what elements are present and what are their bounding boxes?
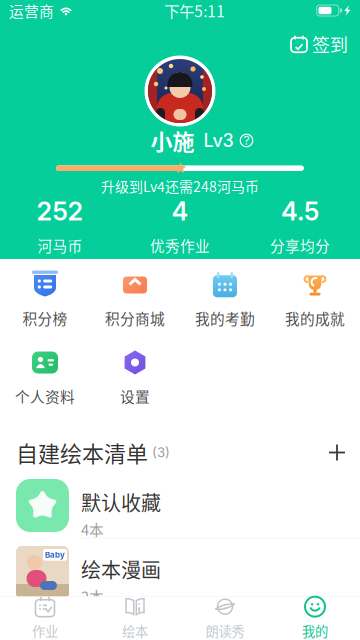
button[interactable]: 我的 bbox=[270, 597, 360, 640]
staticText: Baby bbox=[45, 550, 65, 560]
staticText: 运营商 bbox=[9, 0, 54, 21]
staticText: 小施 bbox=[150, 125, 194, 156]
button[interactable]: 我的考勤 bbox=[180, 262, 270, 340]
staticText: (3) bbox=[148, 444, 170, 460]
staticText: 4 bbox=[171, 196, 188, 227]
button[interactable]: 绘本 bbox=[90, 597, 180, 640]
staticText: 升级到Lv4还需248河马币 bbox=[101, 176, 259, 196]
staticText: Lv3 bbox=[203, 130, 233, 151]
staticText: 我的成就 bbox=[285, 307, 345, 329]
staticText: 个人资料 bbox=[15, 385, 75, 407]
staticText: 绘本漫画 bbox=[81, 554, 161, 583]
staticText: 作业 bbox=[32, 621, 58, 640]
button[interactable]: 积分商城 bbox=[90, 262, 180, 340]
button[interactable]: 设置 bbox=[90, 340, 180, 418]
staticText: 2本 bbox=[81, 585, 104, 607]
staticText: 我的 bbox=[302, 621, 328, 640]
staticText: 自建绘本清单 bbox=[16, 437, 148, 468]
staticText: 252 bbox=[36, 196, 83, 227]
button[interactable]: Baby bbox=[0, 538, 360, 604]
staticText: 下午5:11 bbox=[164, 0, 225, 22]
button[interactable]: 积分榜 bbox=[0, 262, 90, 340]
staticText: 积分榜 bbox=[22, 307, 67, 329]
staticText: ? bbox=[243, 133, 249, 148]
staticText: 积分商城 bbox=[105, 307, 165, 329]
staticText: 4.5 bbox=[281, 196, 319, 227]
button[interactable]: 签到 bbox=[279, 29, 360, 59]
staticText: 绘本 bbox=[122, 621, 148, 640]
button[interactable]: 朗读秀 bbox=[180, 597, 270, 640]
button[interactable]: 等级说明 bbox=[239, 133, 253, 147]
staticText: 签到 bbox=[312, 31, 348, 57]
button[interactable]: 我的成就 bbox=[270, 262, 360, 340]
staticText: 4本 bbox=[81, 518, 104, 540]
button[interactable]: 新建清单 bbox=[322, 437, 352, 467]
staticText: 分享均分 bbox=[270, 235, 330, 256]
button[interactable]: 默认收藏 bbox=[0, 471, 360, 537]
staticText: 设置 bbox=[120, 385, 150, 407]
button[interactable]: 个人资料 bbox=[0, 340, 90, 418]
staticText: 默认收藏 bbox=[81, 487, 161, 516]
button[interactable]: 作业 bbox=[0, 597, 90, 640]
staticText: 我的考勤 bbox=[195, 307, 255, 329]
staticText: 河马币 bbox=[37, 235, 82, 256]
staticText: 朗读秀 bbox=[205, 621, 244, 640]
staticText: 优秀作业 bbox=[150, 235, 210, 256]
